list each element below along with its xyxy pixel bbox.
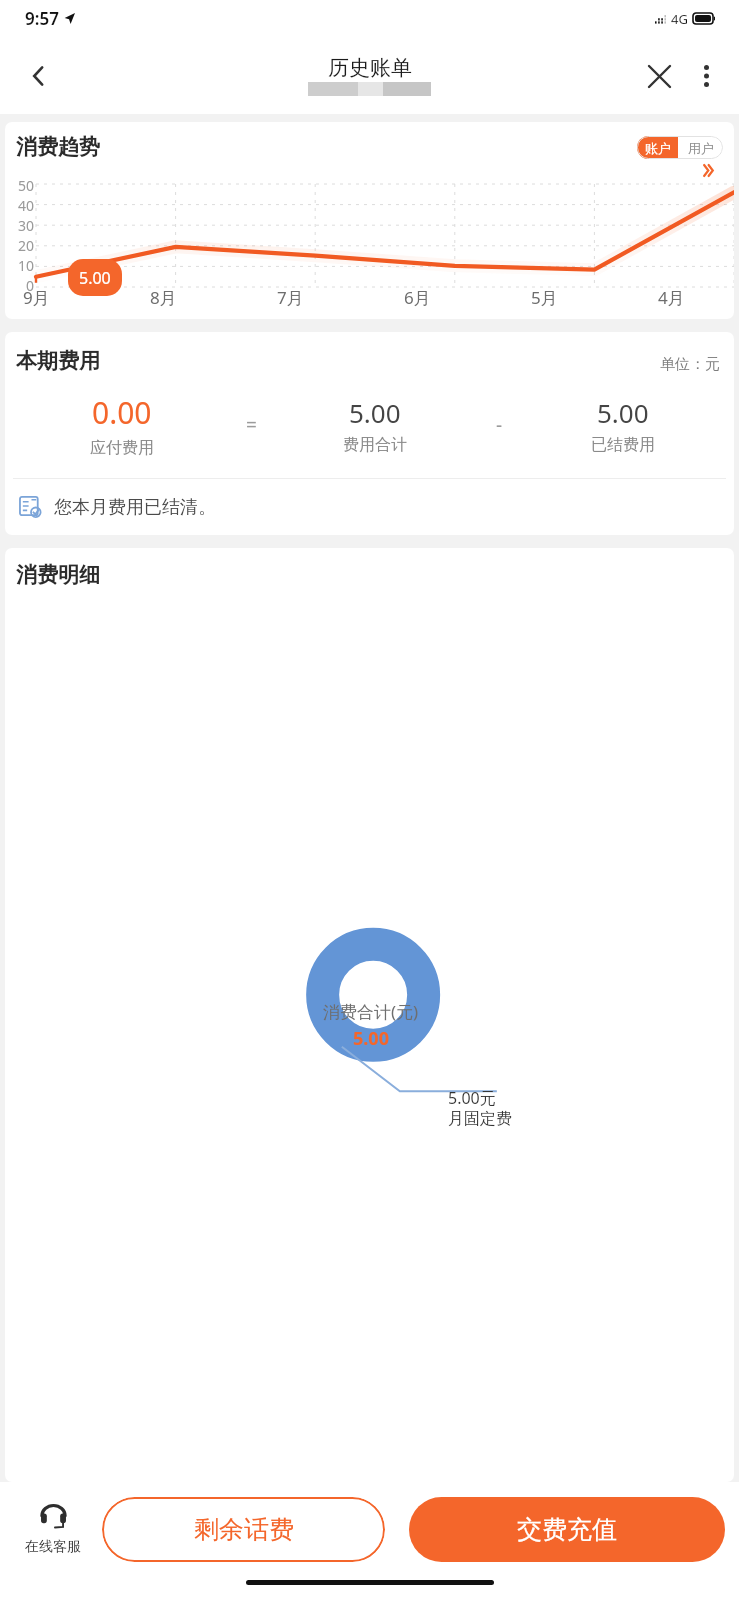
staticText: 费用合计 (343, 435, 407, 455)
staticText: 在线客服 (25, 1538, 81, 1556)
staticText: 40 (18, 196, 35, 215)
staticText: 您本月费用已结清。 (54, 496, 216, 519)
staticText: 9:57 (25, 7, 59, 30)
staticText: 已结费用 (591, 435, 655, 455)
staticText: 10 (18, 256, 35, 275)
staticText: 5.00 (79, 267, 111, 289)
button[interactable]: 剩余话费 (102, 1497, 385, 1562)
staticText: 历史账单 (328, 55, 412, 81)
staticText: 0 (26, 276, 35, 295)
button[interactable]: Close (635, 52, 683, 100)
staticText: 5月 (531, 286, 558, 309)
staticText: 消费合计(元) (323, 1000, 419, 1023)
staticText: 0.00 (92, 392, 152, 433)
staticText: 5.00元 (448, 1087, 496, 1109)
staticText: 用户 (688, 140, 714, 156)
staticText: 4G (671, 10, 688, 28)
staticText: 5.00 (353, 1026, 389, 1051)
staticText: 6月 (404, 286, 431, 309)
staticText: 单位：元 (660, 355, 720, 374)
button[interactable]: 交费充值 (409, 1497, 725, 1562)
staticText: 账户 (645, 140, 671, 156)
staticText: 5.00 (597, 395, 649, 430)
button[interactable]: 在线客服 (16, 1482, 90, 1576)
staticText: 5.00 (349, 395, 401, 430)
staticText: 应付费用 (90, 438, 154, 458)
staticText: = (246, 412, 257, 438)
staticText: 20 (18, 236, 35, 255)
staticText: 8月 (150, 286, 177, 309)
button[interactable]: 用户 (678, 136, 723, 159)
staticText: 消费明细 (16, 562, 100, 588)
staticText: - (496, 412, 503, 438)
staticText: 30 (18, 216, 35, 235)
button[interactable]: 账户 (637, 136, 678, 159)
staticText: 月固定费 (448, 1109, 512, 1129)
staticText: 4月 (658, 286, 685, 309)
button[interactable]: Back (14, 51, 64, 101)
button[interactable]: More options (683, 53, 729, 99)
staticText: 剩余话费 (194, 1514, 294, 1545)
staticText: 交费充值 (517, 1514, 617, 1545)
staticText: 消费趋势 (16, 134, 100, 160)
staticText: 9月 (23, 286, 50, 309)
staticText: 7月 (277, 286, 304, 309)
staticText: 本期费用 (16, 348, 100, 374)
staticText: 50 (18, 176, 35, 195)
